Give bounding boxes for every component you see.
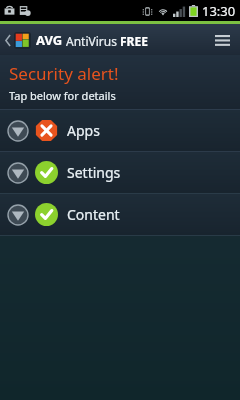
staticText: FREE <box>120 33 148 49</box>
button[interactable]: Back <box>0 24 240 55</box>
staticText: Settings <box>67 163 121 182</box>
button[interactable]: Back <box>3 30 12 50</box>
staticText: Content <box>67 205 120 224</box>
staticText: Apps <box>67 121 100 140</box>
button[interactable]: Content <box>0 194 240 235</box>
staticText: AntiVirus <box>66 33 117 49</box>
staticText: 13:30 <box>202 2 236 20</box>
button[interactable]: Menu <box>212 30 232 50</box>
button[interactable]: Apps <box>0 110 240 151</box>
staticText: Security alert! <box>9 62 119 85</box>
staticText: AVG <box>36 31 63 49</box>
staticText: Tap below for details <box>9 88 116 103</box>
button[interactable]: Settings <box>0 152 240 193</box>
